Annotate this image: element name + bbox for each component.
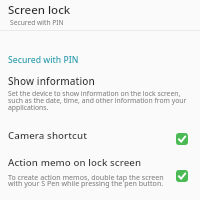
staticText: Show information bbox=[8, 74, 95, 88]
staticText: Secured with PIN bbox=[10, 18, 64, 27]
button[interactable]: Camera shortcut bbox=[0, 122, 200, 152]
button[interactable]: Show information bbox=[0, 70, 200, 115]
button[interactable]: Action memo on lock screen bbox=[0, 152, 200, 190]
staticText: Camera shortcut bbox=[8, 129, 87, 142]
staticText: Secured with PIN bbox=[8, 54, 79, 66]
button[interactable]: Secured with PIN bbox=[0, 31, 200, 70]
staticText: Screen lock bbox=[8, 2, 71, 18]
button[interactable] bbox=[176, 133, 188, 145]
staticText: Set the device to show information on th… bbox=[8, 89, 187, 112]
staticText: To create action memos, double tap the s… bbox=[8, 172, 164, 189]
button[interactable] bbox=[176, 170, 188, 182]
staticText: Action memo on lock screen bbox=[8, 156, 142, 169]
